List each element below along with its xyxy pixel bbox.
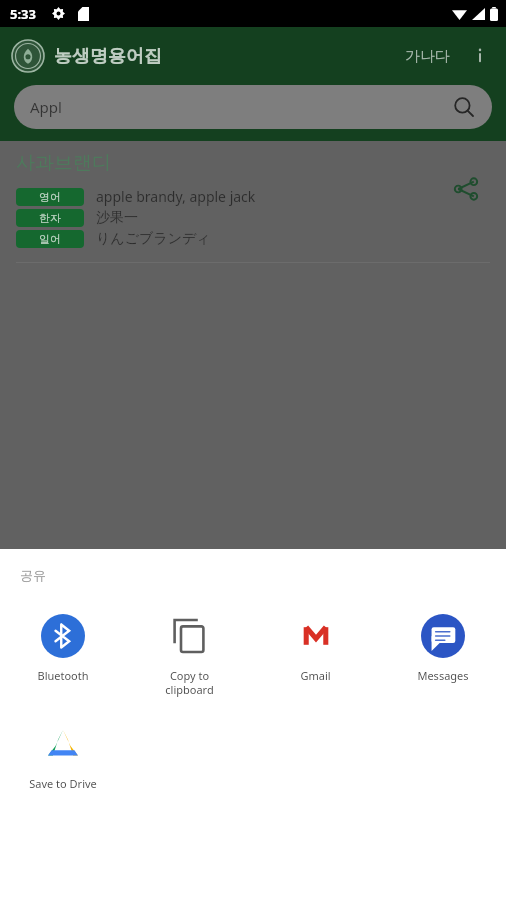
staticText: 한자 xyxy=(39,211,61,225)
staticText: 가나다 xyxy=(405,47,450,66)
staticText: 공유 xyxy=(20,567,46,583)
staticText: 沙果一 xyxy=(96,209,138,227)
staticText: 사과브랜디 xyxy=(16,151,111,175)
button[interactable]: Save to Drive xyxy=(0,717,126,795)
staticText: Appl xyxy=(30,97,62,117)
staticText: 영어 xyxy=(39,190,61,204)
button[interactable]: Info xyxy=(466,42,494,70)
staticText: apple brandy, apple jack xyxy=(96,187,256,206)
button[interactable]: Share xyxy=(446,169,486,209)
staticText: Copy to clipboard xyxy=(165,668,214,697)
staticText: 5:33 xyxy=(10,5,36,23)
button[interactable]: Bluetooth xyxy=(0,609,126,687)
button[interactable]: Messages xyxy=(379,609,506,687)
button[interactable]: Gmail xyxy=(252,609,379,687)
staticText: Save to Drive xyxy=(29,776,97,791)
button[interactable]: Appl xyxy=(14,85,492,129)
staticText: 일어 xyxy=(39,232,61,246)
staticText: Bluetooth xyxy=(37,668,89,683)
button[interactable]: Copy to clipboard xyxy=(126,609,252,701)
staticText: 농생명용어집 xyxy=(54,45,162,68)
staticText: りんごブランディ xyxy=(96,230,211,248)
button[interactable]: 가나다 xyxy=(401,43,454,70)
staticText: Gmail xyxy=(300,668,331,683)
staticText: Messages xyxy=(417,668,469,683)
